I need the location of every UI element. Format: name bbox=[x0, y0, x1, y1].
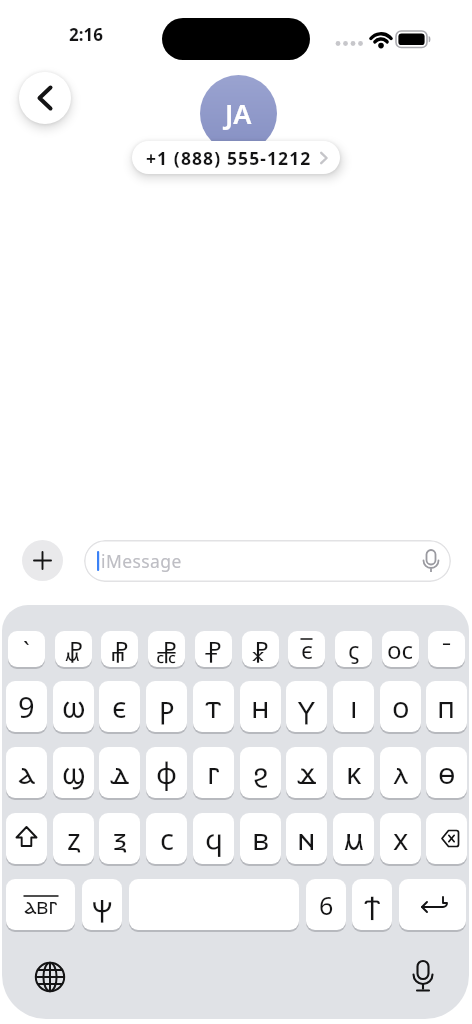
staticText: iMessage bbox=[101, 549, 182, 573]
button[interactable]: ⳧ bbox=[148, 631, 185, 667]
button[interactable]: ⲉ bbox=[288, 631, 325, 667]
button[interactable]: ⲧ bbox=[193, 681, 234, 732]
staticText: ⳨ bbox=[205, 633, 222, 666]
button[interactable]: ⲯ bbox=[82, 879, 122, 930]
button[interactable]: ⲁ bbox=[6, 747, 47, 798]
staticText: ⲡ bbox=[437, 687, 456, 726]
staticText: ⲗ bbox=[394, 753, 408, 792]
staticText: ⲧ bbox=[205, 687, 222, 726]
button[interactable]: ⲗ bbox=[380, 747, 421, 798]
button[interactable] bbox=[399, 879, 466, 930]
staticText: ⳧ bbox=[156, 633, 177, 666]
staticText: ⲥ bbox=[160, 819, 174, 858]
button[interactable]: ϯ bbox=[352, 879, 392, 930]
staticText: ⳦ bbox=[111, 633, 129, 666]
button[interactable]: ⲩ bbox=[286, 681, 327, 732]
staticText: ⲫ bbox=[156, 753, 178, 792]
button[interactable]: ⲍ bbox=[53, 813, 94, 864]
button[interactable]: ϣ bbox=[53, 747, 94, 798]
button[interactable]: ϫ bbox=[286, 747, 327, 798]
button[interactable]: ⲝ bbox=[99, 813, 140, 864]
staticText: ⲣ bbox=[159, 687, 175, 726]
staticText: ⲟ bbox=[392, 687, 410, 726]
staticText: ⲭ bbox=[393, 819, 409, 858]
button[interactable]: ⲙ bbox=[333, 813, 374, 864]
button[interactable]: ⳨ bbox=[195, 631, 232, 667]
button[interactable]: ⲥ bbox=[146, 813, 187, 864]
staticText: JA bbox=[225, 95, 252, 132]
button[interactable]: ⲡ bbox=[426, 681, 467, 732]
staticText: ⲇ bbox=[110, 753, 130, 792]
staticText: ` bbox=[23, 633, 30, 666]
staticText: 2:16 bbox=[69, 23, 103, 45]
staticText: ⲍ bbox=[67, 819, 81, 858]
button[interactable] bbox=[404, 957, 442, 997]
button[interactable]: ⲭ bbox=[380, 813, 421, 864]
button[interactable]: ⲱ bbox=[53, 681, 94, 732]
staticText: ϯ bbox=[364, 885, 381, 924]
staticText: ⲅ bbox=[207, 753, 220, 792]
button[interactable] bbox=[6, 813, 47, 864]
button[interactable]: ⲃ bbox=[240, 813, 281, 864]
staticText: ⳩ bbox=[252, 633, 269, 666]
button[interactable] bbox=[129, 879, 299, 930]
button[interactable]: ⲇ bbox=[99, 747, 140, 798]
button[interactable]: ⲑ bbox=[426, 747, 467, 798]
button[interactable]: ϛ bbox=[335, 631, 372, 667]
staticText: ϣ bbox=[62, 753, 86, 792]
button[interactable]: 6 bbox=[306, 879, 346, 930]
staticText: 9 bbox=[18, 687, 35, 726]
staticText: ϛ bbox=[348, 633, 360, 666]
staticText: ⲝ bbox=[113, 819, 127, 858]
button[interactable]: ⲓ bbox=[333, 681, 374, 732]
button[interactable]: ⲁⲃⲅ bbox=[6, 879, 75, 930]
staticText: ⲉ bbox=[301, 633, 313, 666]
button[interactable]: ⲉ bbox=[99, 681, 140, 732]
staticText: ⲟⲥ bbox=[387, 633, 414, 666]
button[interactable] bbox=[426, 813, 467, 864]
button[interactable]: ⲟ bbox=[380, 681, 421, 732]
button[interactable]: ⲏ bbox=[240, 681, 281, 732]
button[interactable]: ϩ bbox=[240, 747, 281, 798]
button[interactable]: ⳩ bbox=[242, 631, 279, 667]
button[interactable]: ` bbox=[8, 631, 45, 667]
button[interactable]: ⲣ bbox=[146, 681, 187, 732]
staticText: ⳥ bbox=[65, 633, 83, 666]
staticText: +1 (888) 555-1212 bbox=[146, 146, 312, 170]
staticText: ⲛ bbox=[297, 819, 316, 858]
button[interactable] bbox=[22, 540, 63, 581]
staticText: 6 bbox=[319, 888, 334, 922]
button[interactable]: ⳦ bbox=[101, 631, 138, 667]
staticText: ⲱ bbox=[62, 687, 86, 726]
staticText: ⲁⲃⲅ bbox=[24, 892, 58, 921]
button[interactable]: iMessage bbox=[84, 540, 451, 582]
staticText: ⲃ bbox=[252, 819, 269, 858]
staticText: ϫ bbox=[297, 753, 317, 792]
staticText: ⲉ bbox=[112, 687, 127, 726]
button[interactable] bbox=[19, 72, 71, 124]
button[interactable]: ⲫ bbox=[146, 747, 187, 798]
staticText: ϥ bbox=[205, 819, 223, 858]
staticText: ⲁ bbox=[18, 753, 35, 792]
button[interactable]: ⳥ bbox=[55, 631, 92, 667]
button[interactable]: ⲅ bbox=[193, 747, 234, 798]
staticText: ⲩ bbox=[299, 687, 314, 726]
staticText: ⲯ bbox=[92, 885, 113, 924]
button[interactable]: 9 bbox=[6, 681, 47, 732]
button[interactable] bbox=[32, 959, 68, 995]
button[interactable]: +1 (888) 555-1212 bbox=[132, 141, 340, 174]
staticText: ⲏ bbox=[251, 687, 270, 726]
staticText: ⲑ bbox=[438, 753, 456, 792]
button[interactable]: ˉ bbox=[428, 631, 465, 667]
staticText: ˉ bbox=[442, 633, 452, 666]
staticText: ⲓ bbox=[350, 687, 358, 726]
staticText: ⲕ bbox=[346, 753, 362, 792]
button[interactable]: ⲕ bbox=[333, 747, 374, 798]
button[interactable]: ⲟⲥ bbox=[382, 631, 419, 667]
button[interactable]: ϥ bbox=[193, 813, 234, 864]
staticText: ϩ bbox=[253, 753, 269, 792]
staticText: ⲙ bbox=[343, 819, 365, 858]
button[interactable]: ⲛ bbox=[286, 813, 327, 864]
